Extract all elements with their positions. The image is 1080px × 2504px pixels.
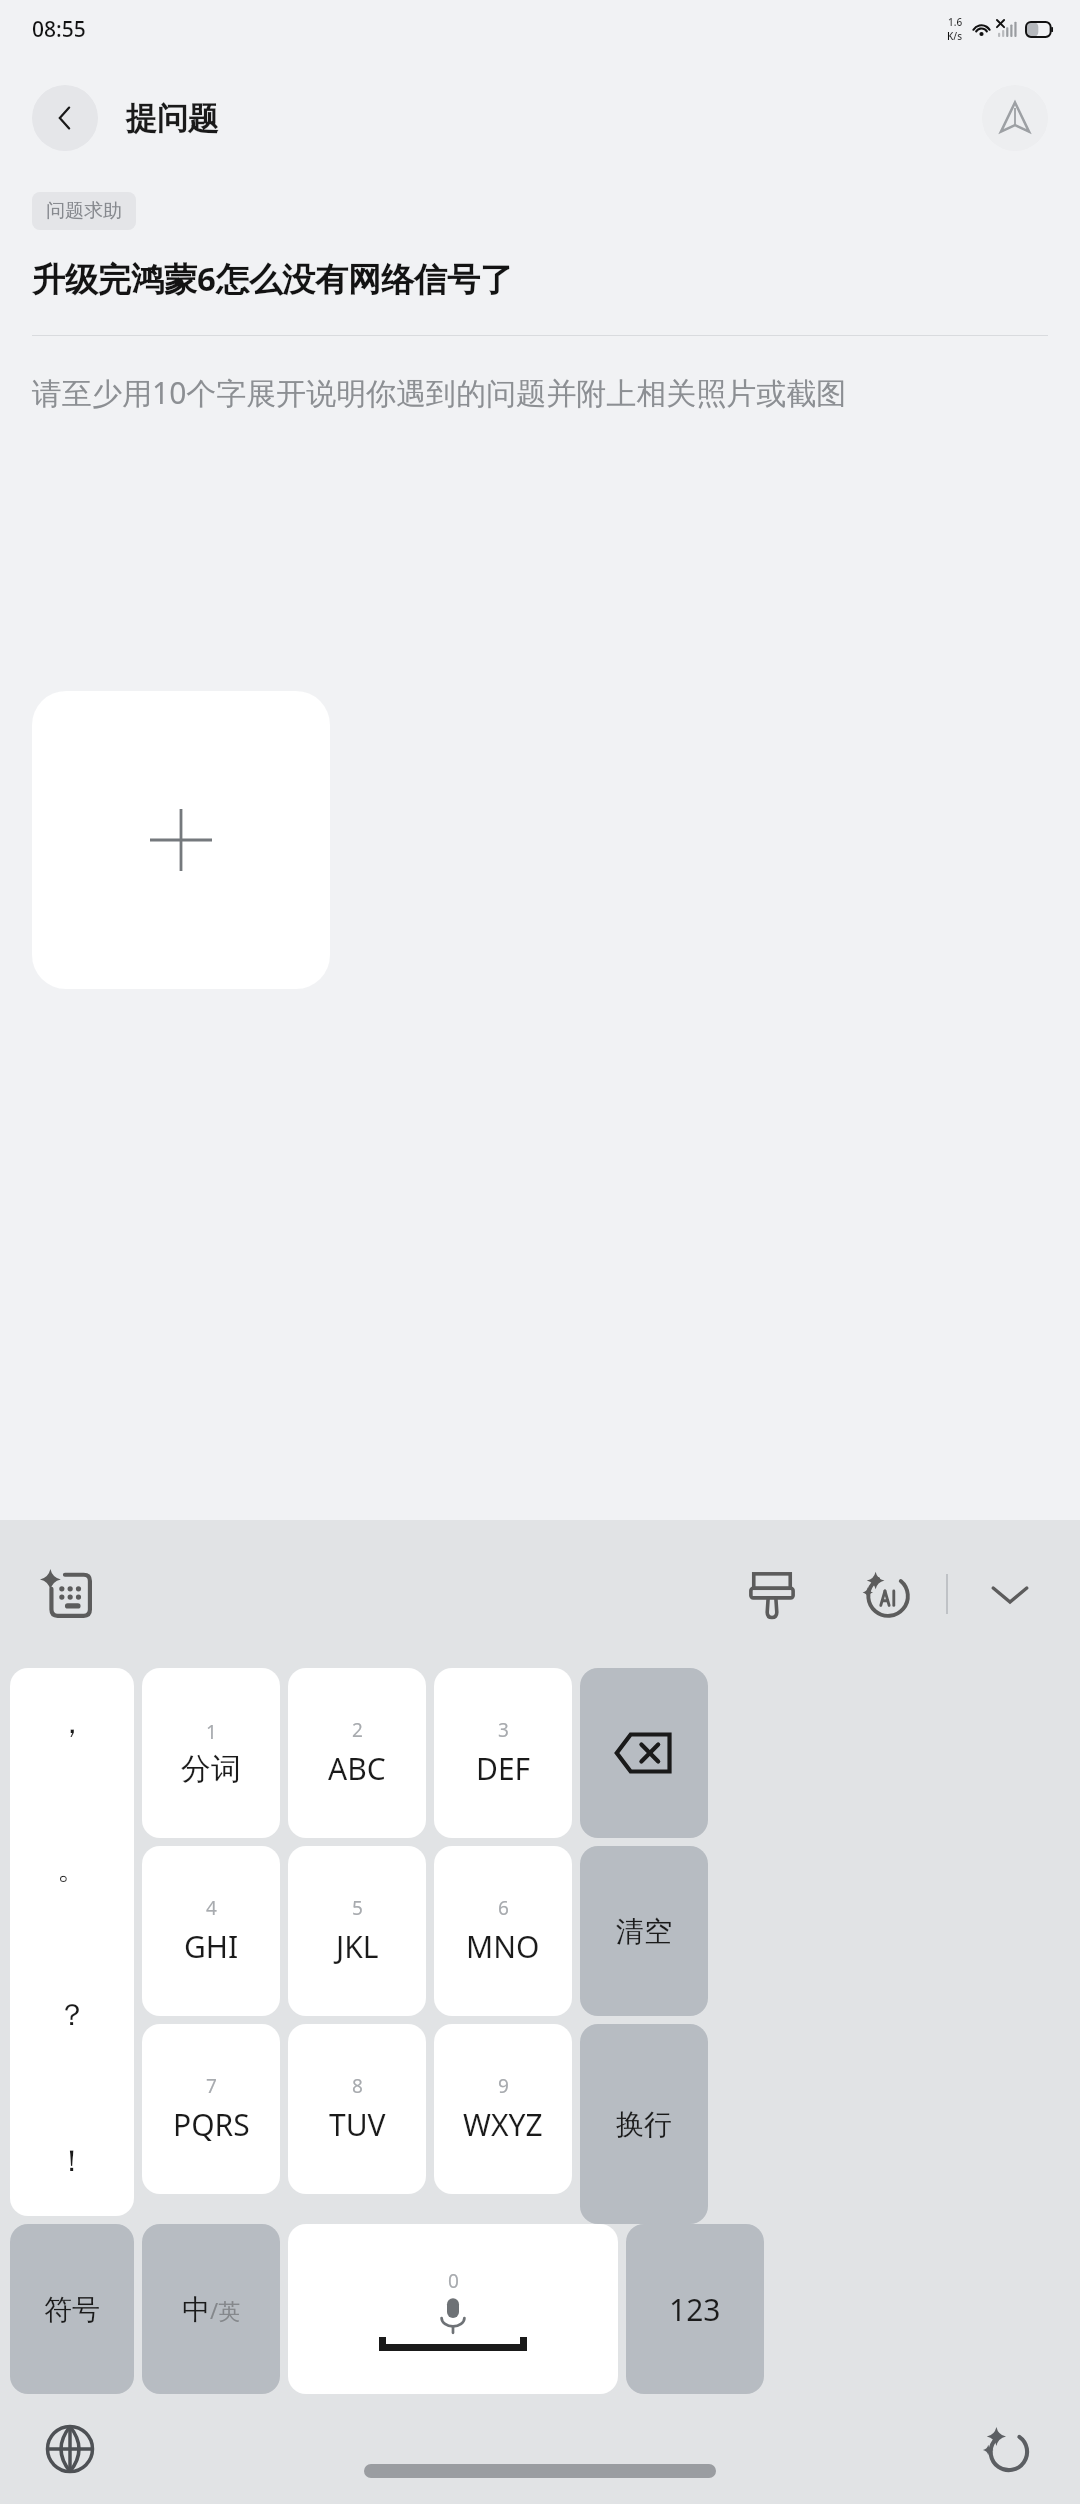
button[interactable]: 8 — [288, 2024, 426, 2194]
staticText: 升级完鸿蒙6怎么没有网络信号了 — [32, 256, 513, 301]
button[interactable]: Space — [288, 2224, 618, 2394]
button[interactable]: 4 — [142, 1846, 280, 2016]
button[interactable]: Backspace — [580, 1668, 708, 1838]
staticText: GHI — [184, 1926, 239, 1967]
staticText: 7 — [206, 2073, 217, 2099]
staticText: JKL — [336, 1926, 379, 1967]
staticText: WXYZ — [463, 2104, 543, 2145]
button[interactable]: AI assist — [850, 1558, 922, 1630]
button[interactable]: 6 — [434, 1846, 572, 2016]
button[interactable]: Back — [32, 85, 98, 151]
staticText: MNO — [466, 1926, 540, 1967]
staticText: 5 — [352, 1895, 363, 1921]
button[interactable]: Switch language — [34, 2413, 106, 2485]
staticText: 4 — [206, 1895, 217, 1921]
staticText: 8 — [352, 2073, 363, 2099]
staticText: ， — [57, 1704, 87, 1742]
staticText: ！ — [57, 2142, 87, 2180]
staticText: 6 — [498, 1895, 509, 1921]
button[interactable]: 清空 — [580, 1846, 708, 2016]
button[interactable]: 5 — [288, 1846, 426, 2016]
staticText: 换行 — [616, 2107, 672, 2142]
button[interactable]: 7 — [142, 2024, 280, 2194]
button[interactable]: 2 — [288, 1668, 426, 1838]
staticText: 1.6 — [948, 15, 963, 29]
staticText: 0 — [448, 2268, 459, 2294]
button[interactable]: Send — [982, 85, 1048, 151]
staticText: DEF — [476, 1748, 531, 1789]
button[interactable]: ， — [10, 1668, 134, 2216]
staticText: 请至少用10个字展开说明你遇到的问题并附上相关照片或截图 — [32, 372, 847, 413]
staticText: 问题求助 — [46, 199, 122, 223]
button[interactable]: 符号 — [10, 2224, 134, 2394]
button[interactable]: Theme — [736, 1558, 808, 1630]
staticText: 3 — [498, 1717, 509, 1743]
button[interactable]: 9 — [434, 2024, 572, 2194]
staticText: PQRS — [173, 2104, 250, 2145]
staticText: 2 — [352, 1717, 363, 1743]
staticText: TUV — [329, 2104, 386, 2145]
staticText: 08:55 — [32, 15, 86, 44]
staticText: K/s — [947, 29, 963, 43]
staticText: ABC — [328, 1748, 386, 1789]
staticText: ？ — [57, 1996, 87, 2034]
button[interactable]: Hide keyboard — [974, 1558, 1046, 1630]
staticText: 分词 — [181, 1750, 241, 1788]
staticText: 123 — [669, 2289, 721, 2330]
button[interactable]: 1 — [142, 1668, 280, 1838]
button[interactable]: 问题求助 — [32, 192, 136, 230]
staticText: 。 — [57, 1850, 87, 1888]
staticText: 清空 — [616, 1914, 672, 1949]
staticText: 中 — [182, 2292, 210, 2327]
button[interactable]: Keyboard AI — [30, 1558, 102, 1630]
staticText: 9 — [498, 2073, 509, 2099]
button[interactable]: AI rewrite — [970, 2413, 1042, 2485]
staticText: 提问题 — [126, 99, 219, 138]
button[interactable]: 中 — [142, 2224, 280, 2394]
button[interactable]: Add photo — [32, 691, 330, 989]
button[interactable]: 123 — [626, 2224, 764, 2394]
staticText: 1 — [206, 1719, 217, 1745]
button[interactable]: 换行 — [580, 2024, 708, 2224]
button[interactable]: 3 — [434, 1668, 572, 1838]
staticText: /英 — [210, 2295, 241, 2325]
staticText: 符号 — [44, 2292, 100, 2327]
